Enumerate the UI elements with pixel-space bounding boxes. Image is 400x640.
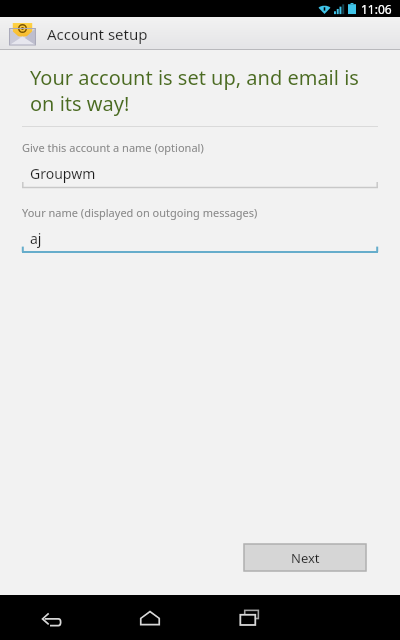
staticText: Your account is set up, and email is on … (30, 64, 378, 117)
staticText: 11:06 (361, 1, 392, 17)
button[interactable]: Recent apps (200, 595, 300, 640)
button[interactable]: Home (100, 595, 200, 640)
button[interactable]: Next (244, 544, 366, 571)
staticText: Account setup (47, 24, 148, 44)
button[interactable]: aj (22, 227, 378, 254)
staticText: Groupwm (30, 164, 96, 183)
button[interactable]: Groupwm (22, 162, 378, 189)
staticText: aj (30, 229, 42, 248)
staticText: Give this account a name (optional) (22, 140, 204, 155)
button[interactable]: Back (0, 595, 100, 640)
staticText: Your name (displayed on outgoing message… (22, 205, 258, 220)
staticText: Next (291, 549, 320, 567)
